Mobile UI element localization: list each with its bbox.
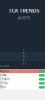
button[interactable]: Charlie [0,77,45,81]
button[interactable]: Bravo [0,73,45,77]
staticText: Delta [0,81,7,85]
staticText: Charlie [0,77,10,81]
button[interactable]: Delta [0,81,45,85]
staticText: Alpha [0,69,8,73]
staticText: AI BTS [18,15,30,20]
staticText: Echo [0,85,6,89]
staticText: center [23,48,26,65]
button[interactable]: Alpha [0,69,45,73]
button[interactable]: Echo [0,85,45,89]
staticText: ACTIVE [0,64,8,68]
staticText: TCA TRENDS [8,7,39,14]
staticText: Bravo [0,73,7,77]
